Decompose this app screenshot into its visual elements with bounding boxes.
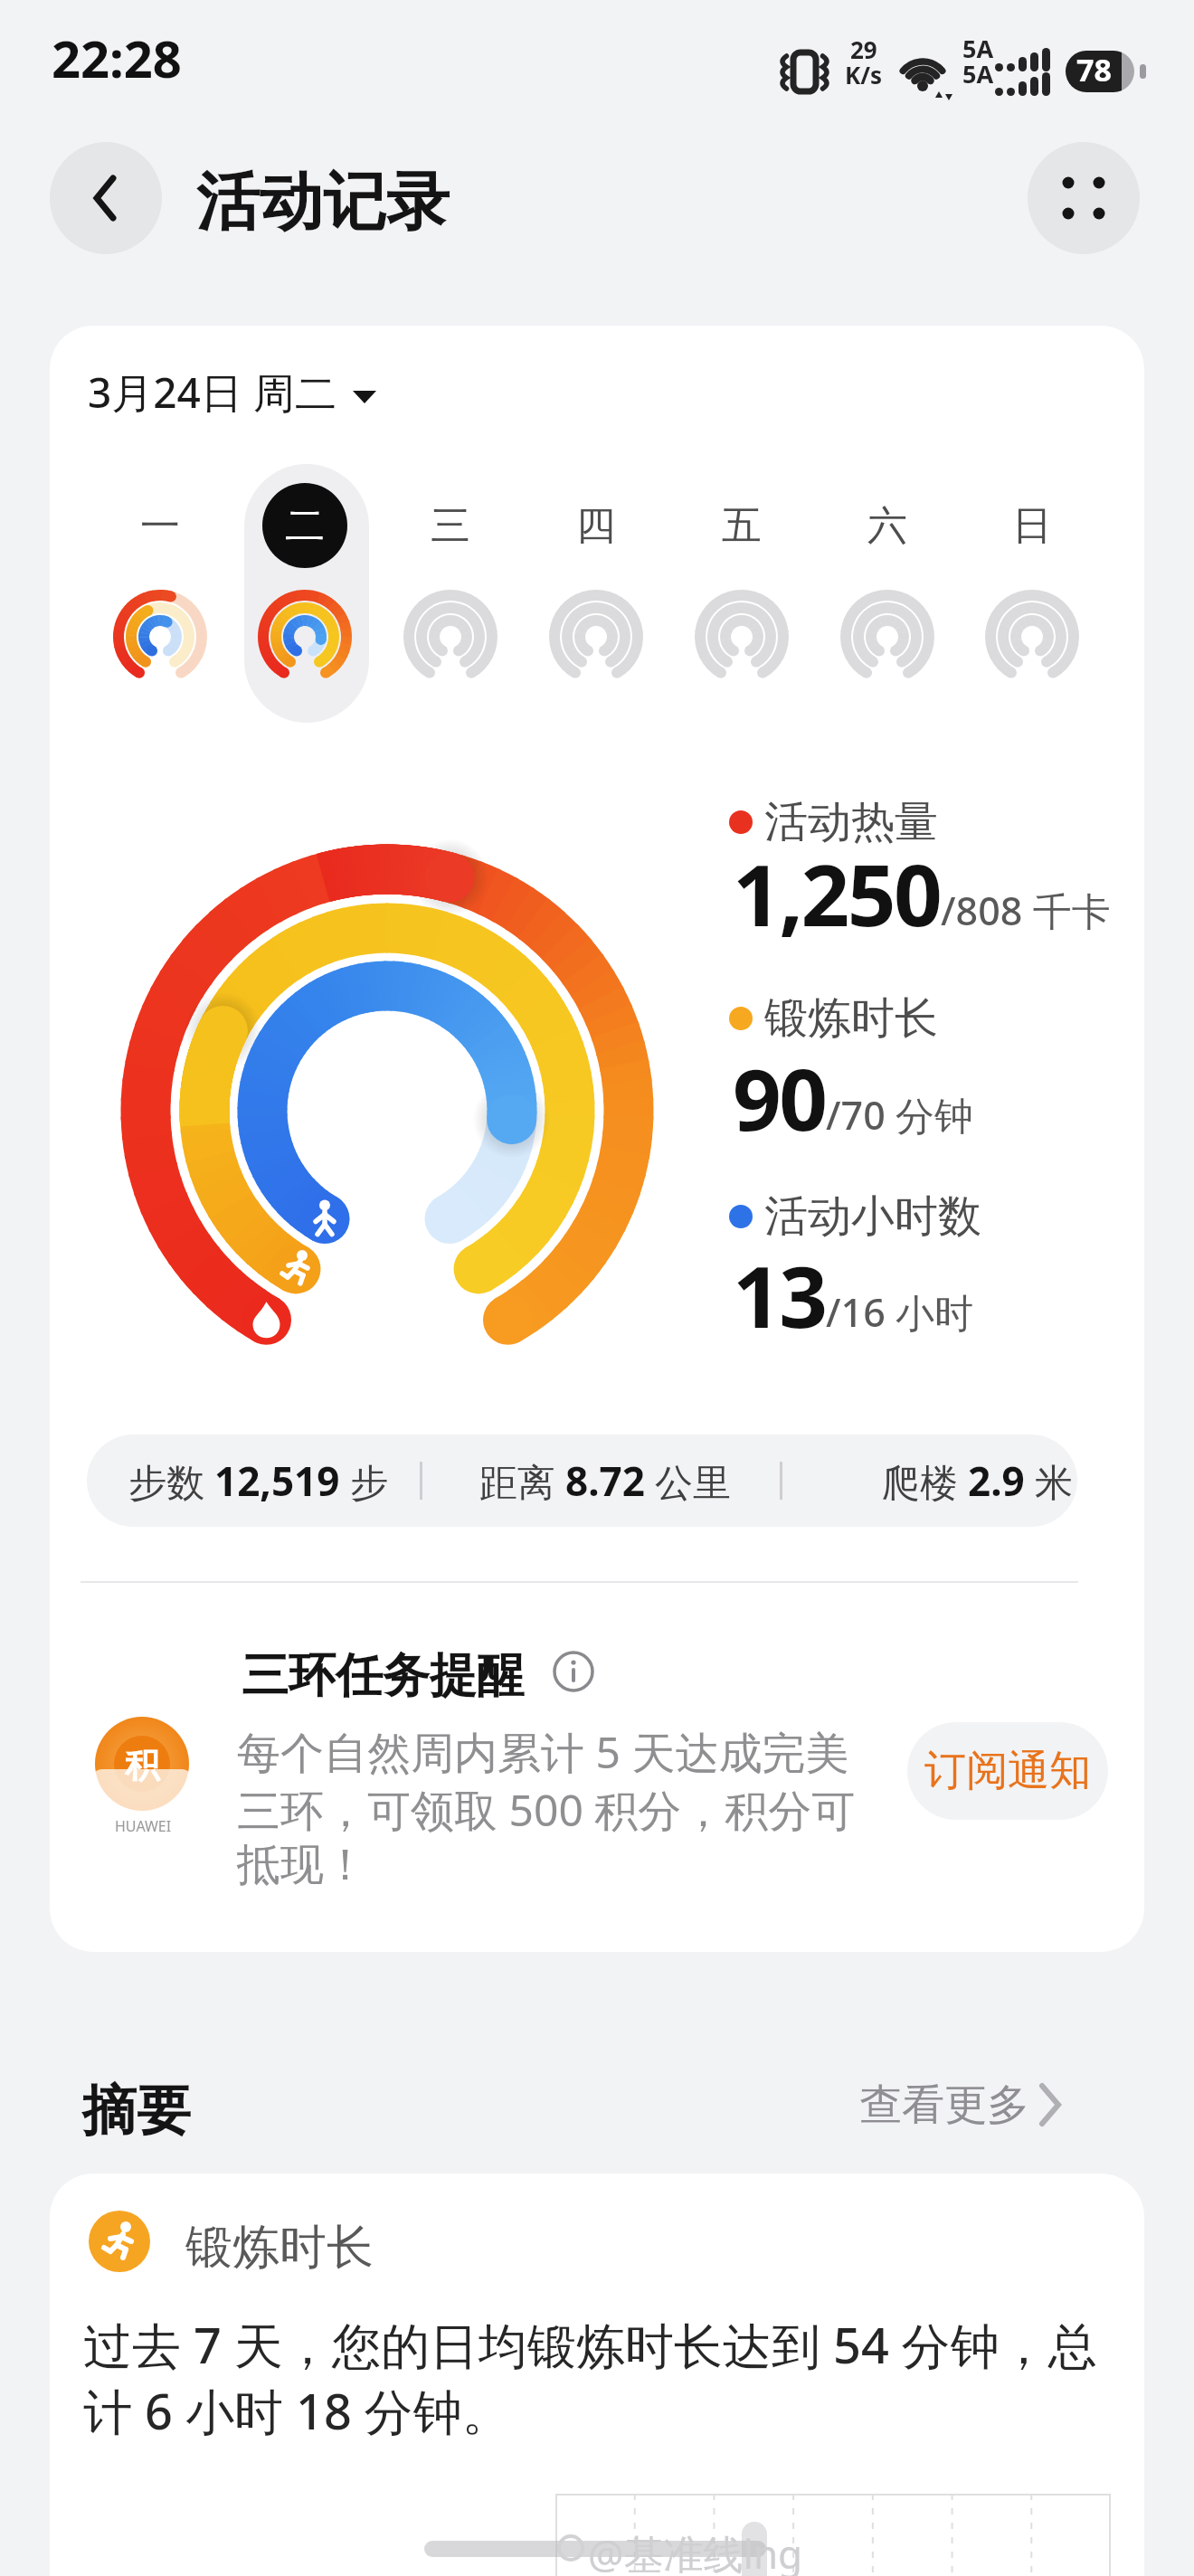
staticText: 三环，可领取 500 积分，积分可 [237,1780,856,1840]
button[interactable] [1028,142,1140,254]
staticText: 积 [125,1744,159,1787]
button[interactable]: 3月24日 周二 [88,364,382,421]
staticText: 米 [1025,1455,1073,1507]
staticText: 活动小时数 [764,1189,981,1244]
staticText: 四 [576,501,616,551]
staticText: 计 6 小时 18 分钟。 [83,2377,511,2444]
staticText: 8.72 [565,1454,645,1508]
button[interactable]: 二 [242,464,367,723]
staticText: /808 千卡 [941,884,1111,937]
button[interactable]: 日 [970,464,1094,723]
staticText: HUAWEI [115,1816,172,1836]
button[interactable]: 三 [388,464,513,723]
staticText: 公里 [645,1455,731,1507]
staticText: 13 [733,1237,826,1353]
staticText: 活动热量 [764,795,938,849]
staticText: 距离 [479,1455,565,1507]
staticText: /70 分钟 [826,1088,973,1141]
staticText: 过去 7 天，您的日均锻炼时长达到 54 分钟，总 [83,2311,1097,2378]
staticText: /16 小时 [826,1285,973,1339]
staticText: 查看更多 [859,2079,1029,2132]
staticText: 每个自然周内累计 5 天达成完美 [237,1722,849,1782]
staticText: 二 [285,501,325,551]
staticText: 摘要 [82,2077,191,2145]
staticText: 活动记录 [196,163,450,242]
staticText: 步数 [128,1455,214,1507]
staticText: 1,250 [733,836,941,952]
staticText: 一 [140,501,180,551]
staticText: 78 [1076,49,1112,90]
staticText: 三 [431,501,470,551]
staticText: 订阅通知 [924,1745,1091,1797]
staticText: 2.9 [968,1454,1025,1508]
button[interactable]: 订阅通知 [907,1722,1108,1820]
button[interactable]: 一 [98,464,223,723]
button[interactable]: 步数 [87,1435,1077,1527]
staticText: 三环任务提醒 [242,1646,524,1706]
button[interactable] [552,1650,595,1693]
staticText: 锻炼时长 [185,2218,374,2278]
button[interactable]: 四 [534,464,659,723]
button[interactable]: 查看更多 [859,2077,1071,2133]
staticText: @基准线lng [588,2526,803,2576]
staticText: 锻炼时长 [764,991,938,1046]
staticText: 29 [850,33,877,65]
staticText: 22:28 [52,24,182,92]
staticText: 抵现！ [237,1838,367,1892]
staticText: 爬楼 [882,1455,968,1507]
staticText: 12,519 [214,1454,340,1508]
staticText: 5A [962,32,994,65]
button[interactable]: 锻炼时长 [50,2173,1144,2576]
button[interactable]: 六 [825,464,950,723]
button[interactable]: 五 [679,464,804,723]
staticText: 日 [1012,501,1052,551]
staticText: 六 [867,501,907,551]
button[interactable] [50,142,162,254]
staticText: K/s [845,59,883,90]
staticText: 90 [733,1040,826,1156]
staticText: 3月24日 周二 [88,364,336,421]
staticText: 五 [722,501,762,551]
staticText: 5A [962,57,994,90]
staticText: 步 [340,1455,388,1507]
